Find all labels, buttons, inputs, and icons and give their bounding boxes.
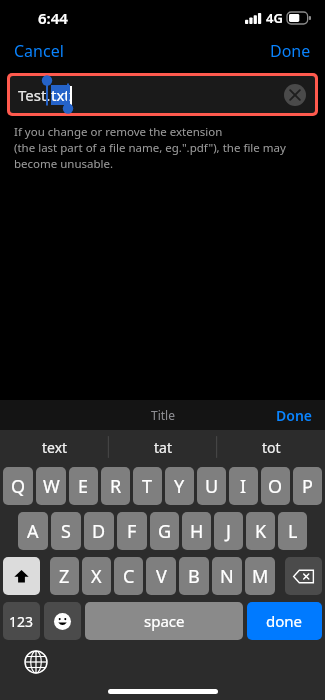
button[interactable]: tot: [217, 430, 325, 464]
staticText: O: [268, 474, 283, 499]
button[interactable]: Cancel: [0, 36, 78, 66]
staticText: txt: [51, 85, 70, 105]
button[interactable]: S: [51, 512, 81, 550]
button[interactable]: K: [246, 512, 275, 550]
staticText: (the last part of a file name, eg.".pdf"…: [14, 140, 286, 156]
staticText: K: [255, 519, 267, 544]
button[interactable]: Q: [3, 467, 33, 505]
button[interactable]: L: [278, 512, 307, 550]
staticText: N: [220, 564, 234, 589]
button[interactable]: text: [0, 430, 109, 464]
staticText: P: [302, 474, 313, 499]
button[interactable]: Done: [256, 36, 325, 66]
button[interactable]: C: [114, 557, 143, 595]
button[interactable]: space: [85, 602, 243, 640]
staticText: text: [42, 438, 68, 457]
staticText: Z: [59, 564, 70, 589]
staticText: Done: [276, 406, 313, 425]
button[interactable]: P: [293, 467, 322, 505]
staticText: T: [142, 474, 153, 499]
staticText: Y: [174, 474, 185, 499]
button[interactable]: E: [69, 467, 98, 505]
staticText: Q: [11, 474, 26, 499]
button[interactable]: M: [245, 557, 275, 595]
staticText: L: [288, 519, 298, 544]
staticText: A: [27, 519, 39, 544]
button[interactable]: H: [182, 512, 211, 550]
button[interactable]: A: [18, 512, 48, 550]
button[interactable]: X: [82, 557, 111, 595]
staticText: Done: [270, 40, 311, 62]
staticText: X: [91, 564, 102, 589]
staticText: 123: [9, 612, 34, 631]
button[interactable]: T: [133, 467, 162, 505]
button[interactable]: Backspace: [285, 557, 322, 595]
staticText: H: [190, 519, 204, 544]
staticText: J: [226, 519, 231, 544]
button[interactable]: 123: [3, 602, 40, 640]
staticText: D: [92, 519, 106, 544]
staticText: B: [188, 564, 200, 589]
staticText: F: [127, 519, 137, 544]
button[interactable]: Change keyboard language: [24, 650, 48, 674]
button[interactable]: Z: [50, 557, 79, 595]
staticText: W: [43, 474, 60, 499]
button[interactable]: G: [150, 512, 179, 550]
button[interactable]: R: [101, 467, 130, 505]
staticText: Title: [151, 407, 175, 423]
staticText: Test.: [18, 85, 51, 105]
button[interactable]: Shift: [3, 557, 40, 595]
button[interactable]: tat: [109, 430, 217, 464]
button[interactable]: J: [214, 512, 243, 550]
button[interactable]: done: [247, 602, 322, 640]
staticText: become unusable.: [14, 156, 114, 172]
button[interactable]: Done: [264, 402, 325, 429]
staticText: G: [158, 519, 172, 544]
staticText: I: [240, 474, 247, 499]
button[interactable]: O: [261, 467, 290, 505]
staticText: M: [252, 564, 269, 589]
staticText: E: [78, 474, 89, 499]
staticText: R: [110, 474, 122, 499]
button[interactable]: Y: [165, 467, 194, 505]
button[interactable]: Clear text: [284, 84, 306, 106]
button[interactable]: U: [197, 467, 226, 505]
button[interactable]: W: [36, 467, 66, 505]
button[interactable]: Emoji: [44, 602, 81, 640]
button[interactable]: N: [212, 557, 242, 595]
staticText: C: [123, 564, 135, 589]
staticText: S: [61, 519, 71, 544]
staticText: tot: [262, 438, 281, 457]
button[interactable]: V: [146, 557, 176, 595]
staticText: If you change or remove the extension: [14, 124, 223, 140]
button[interactable]: D: [84, 512, 114, 550]
staticText: space: [144, 611, 185, 631]
staticText: 4G: [266, 9, 283, 27]
button[interactable]: Test.: [10, 76, 315, 113]
staticText: U: [205, 474, 219, 499]
button[interactable]: I: [229, 467, 258, 505]
button[interactable]: F: [117, 512, 147, 550]
staticText: done: [266, 611, 303, 631]
button[interactable]: B: [179, 557, 209, 595]
staticText: tat: [154, 438, 172, 457]
staticText: Cancel: [14, 40, 64, 62]
staticText: V: [156, 564, 167, 589]
staticText: 6:44: [38, 8, 68, 28]
